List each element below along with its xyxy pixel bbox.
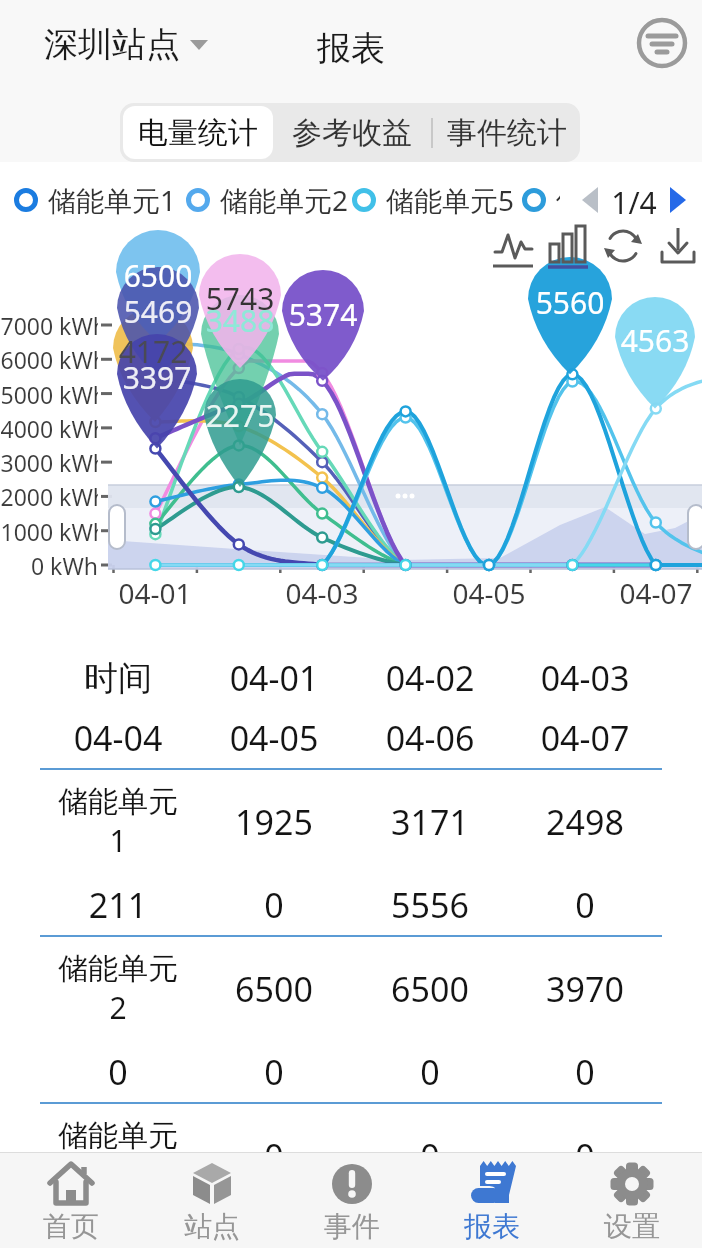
button[interactable]: 电量统计 bbox=[123, 106, 273, 159]
staticText: 2275 bbox=[190, 395, 290, 429]
staticText: 2498 bbox=[508, 799, 662, 845]
button[interactable]: 储能单元2 bbox=[186, 180, 349, 220]
staticText: 储能单元2 bbox=[220, 181, 349, 219]
button[interactable]: 储能单元5 bbox=[352, 180, 515, 220]
staticText: 参考收益 bbox=[292, 114, 412, 152]
staticText: 4000 kWh bbox=[0, 413, 98, 444]
staticText: 储 bbox=[556, 183, 584, 218]
staticText: 0 bbox=[352, 1208, 508, 1248]
staticText: 0 bbox=[196, 882, 352, 928]
staticText: 0 bbox=[352, 1049, 508, 1095]
staticText: 报表 bbox=[281, 27, 421, 67]
staticText: 04-03 bbox=[272, 574, 372, 608]
staticText: 深圳站点 bbox=[44, 23, 180, 66]
staticText: 04-05 bbox=[196, 715, 352, 761]
staticText: 0 bbox=[40, 1208, 196, 1248]
staticText: 事件统计 bbox=[447, 114, 567, 152]
staticText: 5374 bbox=[273, 294, 373, 328]
staticText: 3000 kWh bbox=[0, 447, 98, 478]
button[interactable]: 首页 bbox=[0, 1153, 141, 1248]
staticText: 04-06 bbox=[352, 715, 508, 761]
staticText: 储能单元 2 bbox=[40, 950, 196, 1028]
staticText: 0 bbox=[508, 1208, 662, 1248]
button[interactable]: 参考收益 bbox=[273, 103, 431, 162]
staticText: 0 kWh bbox=[0, 550, 98, 581]
staticText: 电量统计 bbox=[138, 114, 258, 152]
staticText: 3970 bbox=[508, 966, 662, 1012]
staticText: 1/4 bbox=[606, 182, 662, 218]
staticText: 5560 bbox=[520, 282, 620, 316]
staticText: 211 bbox=[40, 882, 196, 928]
button[interactable] bbox=[636, 17, 688, 69]
staticText: 04-02 bbox=[352, 655, 508, 701]
staticText: 5743 bbox=[190, 278, 290, 312]
staticText: 6000 kWh bbox=[0, 344, 98, 375]
button[interactable] bbox=[580, 186, 604, 210]
staticText: 6500 bbox=[108, 255, 208, 289]
button[interactable]: 站点 bbox=[141, 1153, 282, 1248]
staticText: 4172 bbox=[103, 331, 203, 365]
button[interactable]: 储 bbox=[522, 180, 584, 220]
staticText: 0 bbox=[196, 1208, 352, 1248]
staticText: 6500 bbox=[196, 966, 352, 1012]
button[interactable] bbox=[666, 186, 690, 210]
staticText: 04-03 bbox=[508, 655, 662, 701]
staticText: 时间 bbox=[40, 657, 196, 700]
staticText: 7000 kWh bbox=[0, 310, 98, 341]
staticText: 0 bbox=[352, 1133, 508, 1179]
staticText: 04-07 bbox=[508, 715, 662, 761]
staticText: 0 bbox=[508, 1133, 662, 1179]
staticText: 0 bbox=[196, 1049, 352, 1095]
staticText: 5469 bbox=[108, 291, 208, 325]
staticText: 报表 bbox=[464, 1209, 520, 1244]
staticText: 3171 bbox=[352, 799, 508, 845]
staticText: 1925 bbox=[196, 799, 352, 845]
staticText: 6500 bbox=[352, 966, 508, 1012]
staticText: 04-07 bbox=[606, 574, 702, 608]
staticText: 3488 bbox=[190, 300, 290, 334]
button[interactable]: 储能单元1 bbox=[14, 180, 177, 220]
staticText: 04-01 bbox=[196, 655, 352, 701]
staticText: 5556 bbox=[352, 882, 508, 928]
staticText: 0 bbox=[40, 1049, 196, 1095]
staticText: 储能单元5 bbox=[386, 181, 515, 219]
staticText: 0 bbox=[508, 1049, 662, 1095]
staticText: 事件 bbox=[324, 1209, 380, 1244]
staticText: 首页 bbox=[43, 1209, 99, 1244]
staticText: 1000 kWh bbox=[0, 516, 98, 547]
button[interactable]: 事件统计 bbox=[433, 103, 580, 162]
staticText: 0 bbox=[196, 1133, 352, 1179]
staticText: 3397 bbox=[107, 357, 207, 391]
staticText: 04-05 bbox=[439, 574, 539, 608]
button[interactable]: 设置 bbox=[562, 1153, 702, 1248]
staticText: 5000 kWh bbox=[0, 379, 98, 410]
staticText: 设置 bbox=[604, 1209, 660, 1244]
staticText: 04-01 bbox=[105, 574, 205, 608]
staticText: 储能单元 3 bbox=[40, 1117, 196, 1195]
staticText: 4563 bbox=[605, 320, 702, 354]
staticText: 储能单元 1 bbox=[40, 783, 196, 861]
button[interactable]: 事件 bbox=[282, 1153, 422, 1248]
button[interactable]: 深圳站点 bbox=[44, 0, 208, 88]
staticText: 站点 bbox=[184, 1209, 240, 1244]
staticText: 0 bbox=[508, 882, 662, 928]
staticText: 储能单元1 bbox=[48, 181, 177, 219]
staticText: 04-04 bbox=[40, 715, 196, 761]
staticText: 2000 kWh bbox=[0, 481, 98, 512]
button[interactable]: 报表 bbox=[422, 1153, 562, 1248]
